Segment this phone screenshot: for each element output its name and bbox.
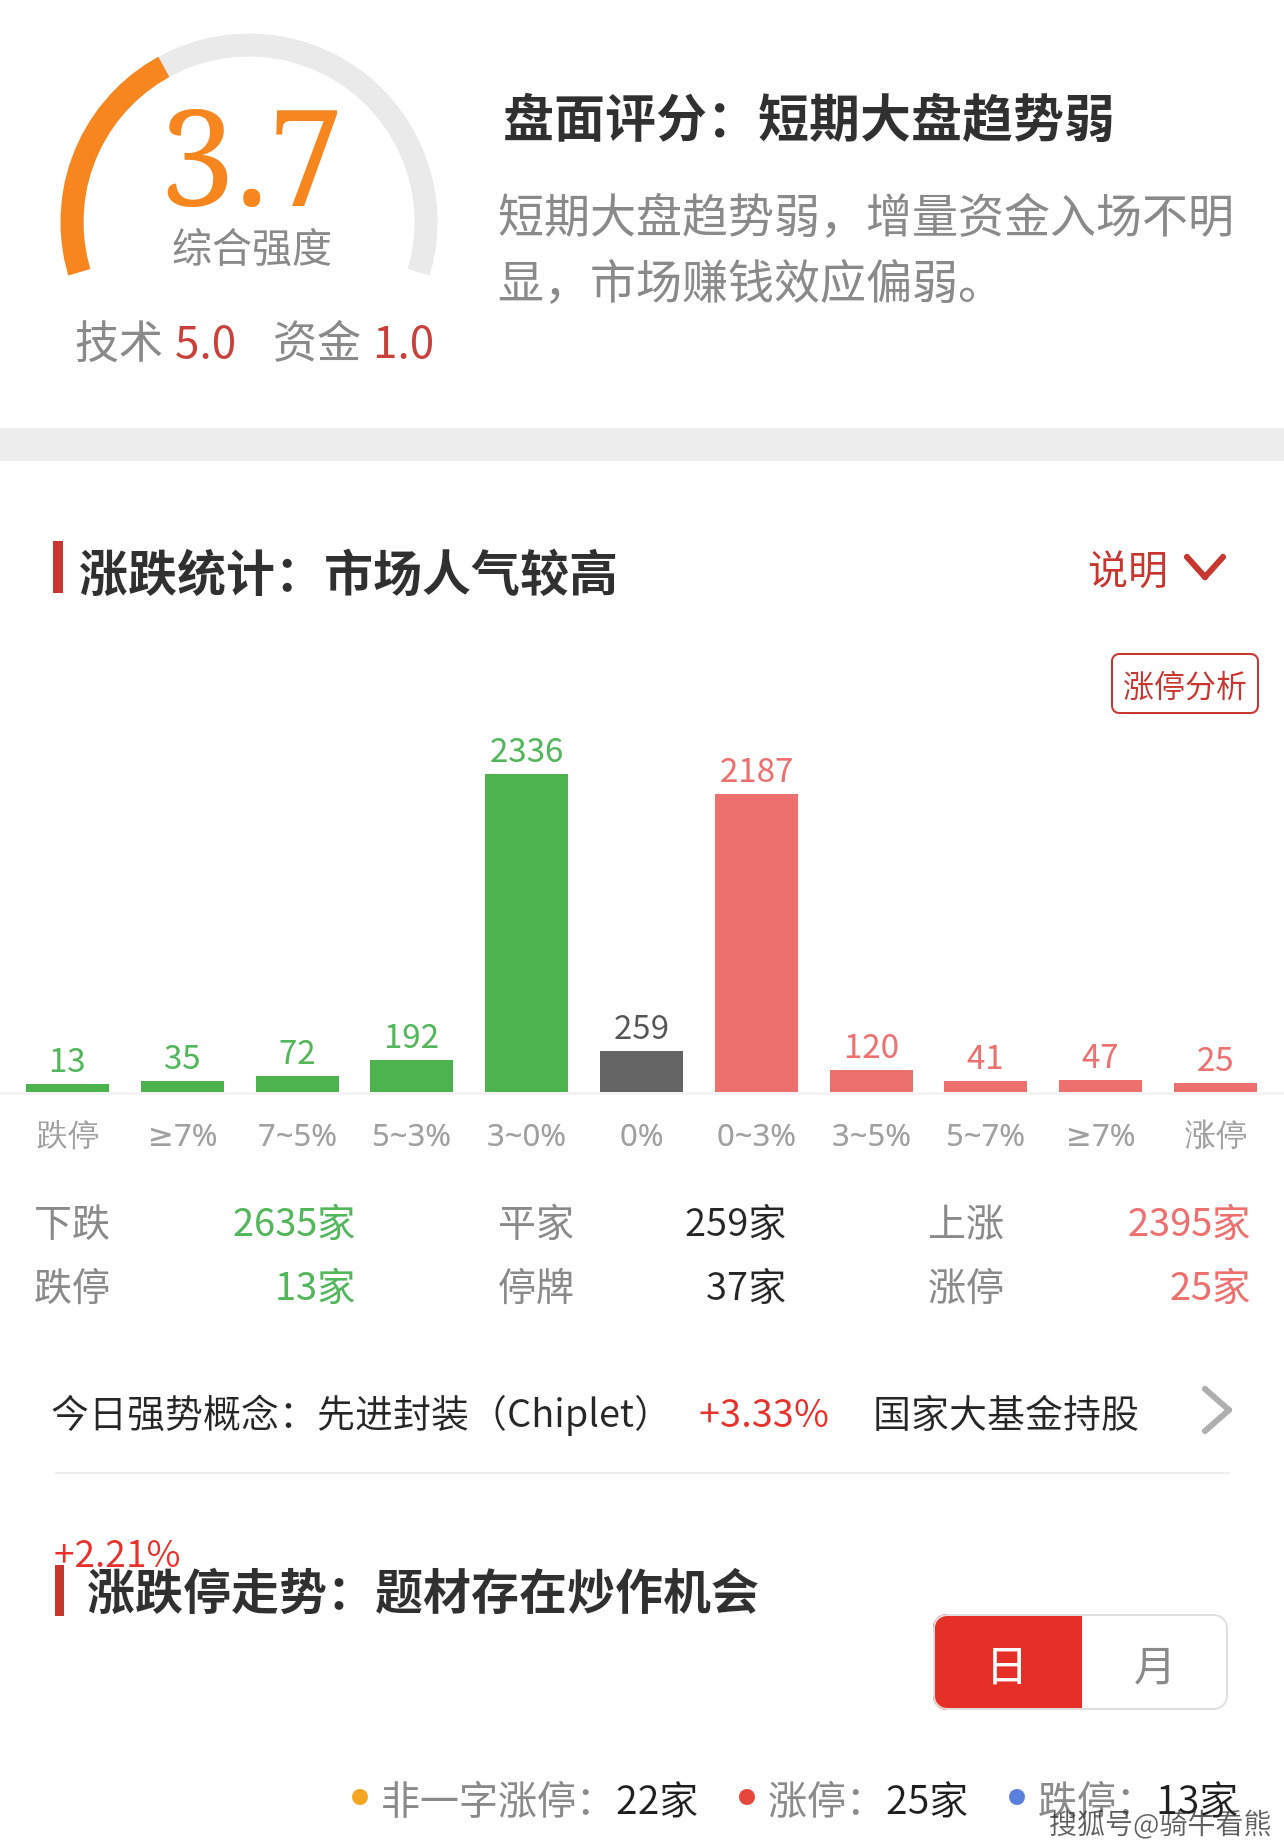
staticText: ≥7% [1066,1113,1136,1155]
staticText: 2395家 [1128,1192,1251,1247]
staticText: 0~3% [717,1113,796,1155]
staticText: 25家 [1170,1256,1251,1311]
staticText: 跌停 [34,1256,111,1311]
staticText: 今日强势概念：先进封装（Chiplet） [51,1383,673,1438]
staticText: 47 [1082,1030,1119,1076]
staticText: 下跌 [34,1192,111,1247]
staticText: 涨停分析 [1123,661,1247,706]
staticText: 192 [384,1010,439,1056]
staticText: 72 [279,1026,316,1072]
staticText: 37家 [706,1256,787,1311]
staticText: 涨停： [768,1769,886,1825]
staticText: 涨停 [1185,1115,1247,1154]
button[interactable]: 非一字涨停： [352,1769,699,1825]
staticText: 2187 [720,744,794,790]
staticText: 3.7 [160,63,344,223]
staticText: 跌停 [37,1115,99,1154]
staticText: 非一字涨停： [381,1769,616,1825]
staticText: 1.0 [373,307,435,371]
button[interactable]: 跌停： [1009,1769,1239,1825]
button[interactable]: 今日强势概念：先进封装（Chiplet） [0,1380,1284,1440]
staticText: 5~3% [372,1113,451,1155]
staticText: 2635家 [233,1192,356,1247]
button[interactable]: 技术 [75,307,435,371]
staticText: 259家 [685,1192,787,1247]
staticText: 7~5% [258,1113,337,1155]
staticText: 日 [986,1632,1029,1693]
staticText: 0% [620,1113,664,1155]
other: More hot concepts [1202,1386,1232,1434]
staticText: 3~5% [832,1113,911,1155]
staticText: 2336 [490,724,564,770]
staticText: 上涨 [928,1192,1005,1247]
staticText: 综合强度 [172,216,332,268]
staticText: 跌停： [1038,1769,1156,1825]
staticText: 国家大基金持股 [873,1383,1140,1438]
staticText: 22家 [616,1769,699,1825]
staticText: 259 [614,1001,669,1047]
staticText: 平家 [498,1192,575,1247]
staticText: 短期大盘趋势弱，增量资金入场不明显，市场赚钱效应偏弱。 [498,179,1242,311]
staticText: +3.33% [699,1383,829,1438]
staticText: 13家 [1156,1769,1239,1825]
staticText: 41 [967,1031,1004,1077]
staticText: 说明 [1088,538,1168,596]
staticText: 3~0% [487,1113,566,1155]
staticText: +2.21% [54,1524,181,1578]
staticText: 5.0 [175,307,237,371]
staticText: 120 [844,1020,899,1066]
staticText: 25 [1197,1033,1234,1079]
staticText: 技术 [75,307,163,371]
staticText: 资金 [273,307,361,371]
staticText: 盘面评分：短期大盘趋势弱 [503,78,1116,152]
other: Overall strength gauge 3.7 [40,20,460,300]
staticText: 25家 [886,1769,969,1825]
staticText: 月 [1134,1632,1177,1693]
staticText: 停牌 [498,1256,575,1311]
staticText: 13家 [275,1256,356,1311]
staticText: 搜狐号@骑牛看熊 [1049,1802,1272,1843]
staticText: 35 [164,1031,201,1077]
staticText: ≥7% [148,1113,218,1155]
button[interactable]: 月 [1082,1614,1228,1710]
staticText: 涨跌停走势：题材存在炒作机会 [87,1553,760,1623]
button[interactable]: 涨停： [739,1769,969,1825]
button[interactable]: 日 [933,1614,1082,1710]
staticText: 5~7% [946,1113,1025,1155]
staticText: 涨跌统计：市场人气较高 [79,534,619,605]
button[interactable]: 涨停分析 [1111,653,1259,714]
staticText: 13 [49,1034,86,1080]
button[interactable]: 说明 [1088,538,1226,596]
staticText: 涨停 [928,1256,1005,1311]
